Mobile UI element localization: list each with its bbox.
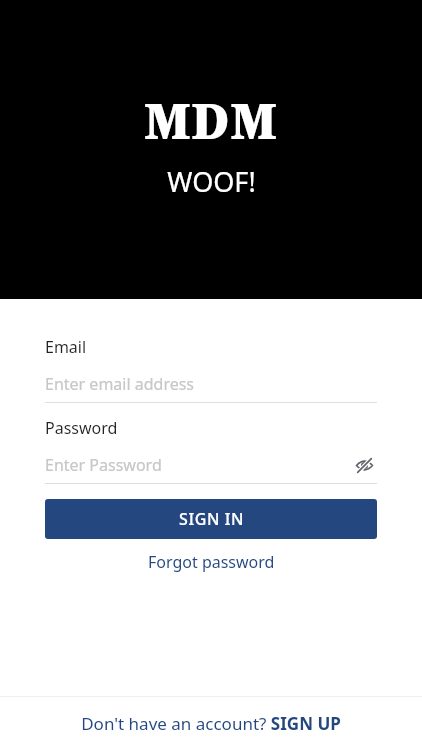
button[interactable]: Enter email address (45, 370, 377, 398)
button[interactable]: SIGN IN (45, 499, 377, 539)
staticText: Forgot password (148, 551, 275, 573)
staticText: Enter Password (45, 454, 162, 476)
staticText: WOOF! (167, 163, 256, 200)
staticText: SIGN IN (179, 508, 244, 530)
button[interactable]: Forgot password (140, 548, 283, 576)
staticText: Password (45, 417, 118, 439)
button[interactable]: Enter Password (45, 451, 351, 479)
staticText: MDM (144, 88, 278, 153)
staticText: Don't have an account? SIGN UP (81, 712, 341, 735)
staticText: Enter email address (45, 373, 195, 395)
staticText: Email (45, 336, 87, 358)
button[interactable]: Show password (351, 452, 377, 478)
button[interactable]: Don't have an account? SIGN UP (0, 697, 422, 750)
